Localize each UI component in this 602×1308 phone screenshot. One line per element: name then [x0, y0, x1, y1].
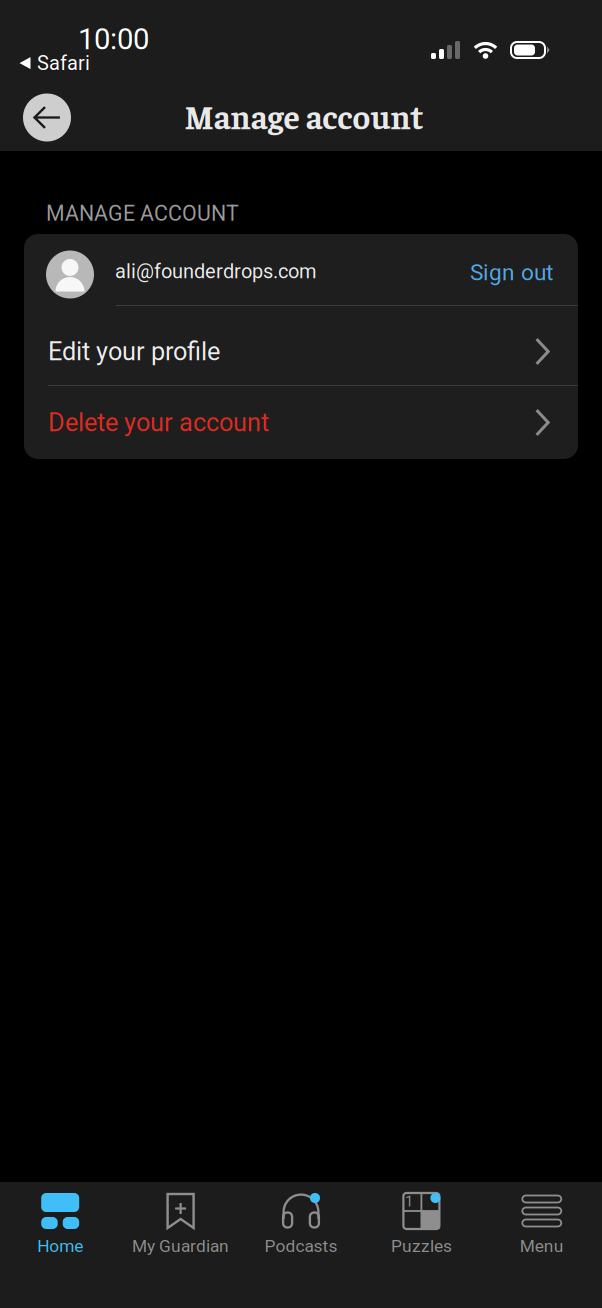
staticText: Manage account	[184, 94, 423, 136]
staticText: Podcasts	[264, 1236, 337, 1256]
button[interactable]: Edit your profile	[24, 306, 578, 385]
staticText: Delete your account	[48, 408, 269, 437]
button[interactable]: Podcasts	[241, 1182, 361, 1308]
staticText: Home	[37, 1236, 83, 1256]
staticText: Safari	[37, 51, 90, 75]
button[interactable]: 1	[361, 1182, 482, 1308]
staticText: Edit your profile	[48, 337, 220, 366]
staticText: 1	[405, 1193, 413, 1210]
button[interactable]: Back	[23, 93, 71, 141]
button[interactable]: ali@founderdrops.com	[24, 234, 578, 305]
staticText: Menu	[520, 1236, 564, 1256]
button[interactable]: Menu	[482, 1182, 602, 1308]
button[interactable]: Home	[0, 1182, 120, 1308]
staticText: My Guardian	[132, 1236, 229, 1256]
button[interactable]: Delete your account	[24, 386, 578, 459]
staticText: MANAGE ACCOUNT	[46, 201, 239, 226]
staticText: Puzzles	[391, 1236, 452, 1256]
staticText: ali@founderdrops.com	[115, 260, 317, 283]
staticText: 10:00	[78, 22, 149, 56]
staticText: Sign out	[470, 259, 553, 286]
button[interactable]: My Guardian	[120, 1182, 241, 1308]
